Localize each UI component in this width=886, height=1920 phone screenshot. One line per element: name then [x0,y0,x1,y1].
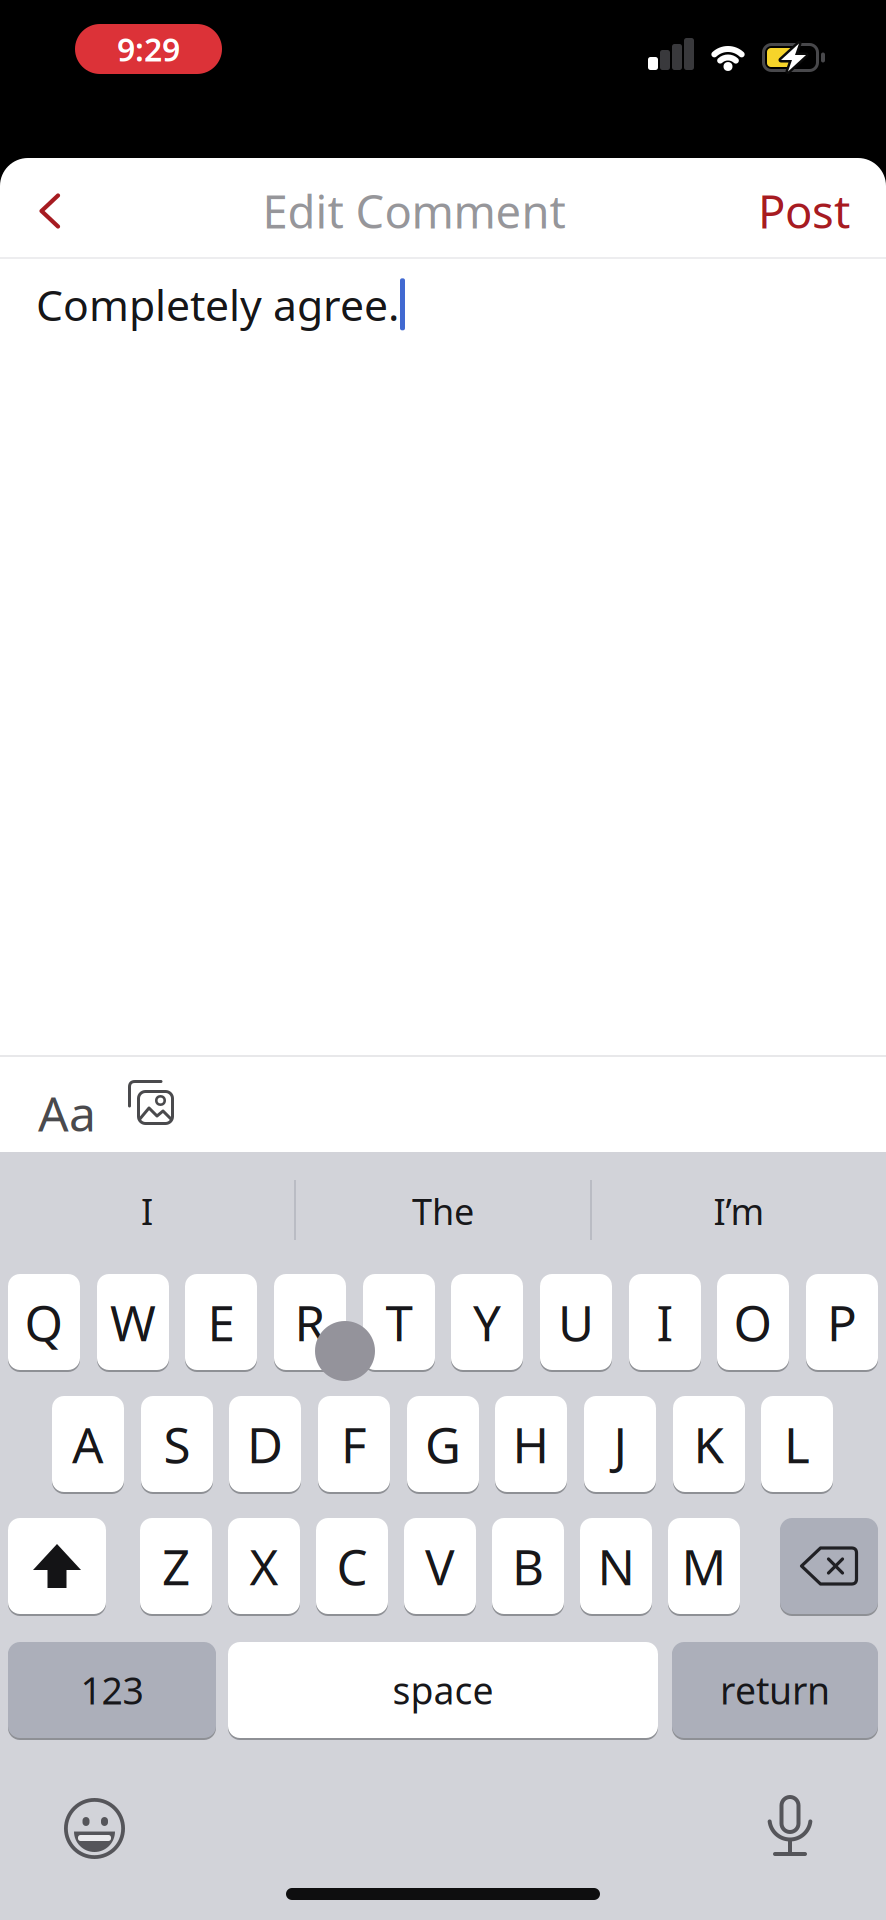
button[interactable] [128,1080,176,1128]
button[interactable]: O [717,1274,789,1370]
staticText: Z [162,1533,190,1599]
staticText: The [412,1187,474,1235]
staticText: Completely agree. [36,276,399,333]
staticText: U [558,1289,594,1355]
button[interactable]: return [672,1642,878,1738]
staticText: D [247,1411,283,1477]
button[interactable]: 9:29 [75,24,222,74]
staticText: 123 [80,1665,143,1715]
button[interactable]: 123 [8,1642,216,1738]
button[interactable]: I [629,1274,701,1370]
button[interactable]: Y [451,1274,523,1370]
staticText: A [72,1411,104,1477]
button[interactable]: K [673,1396,745,1492]
staticText: Aa [38,1081,96,1145]
staticText: K [693,1411,724,1477]
staticText: B [512,1533,544,1599]
button[interactable]: G [407,1396,479,1492]
button[interactable]: F [318,1396,390,1492]
staticText: Y [473,1289,501,1355]
staticText: G [425,1411,461,1477]
button[interactable] [20,183,80,239]
button[interactable]: I [0,1176,294,1246]
button[interactable]: M [668,1518,740,1614]
button[interactable]: space [228,1642,658,1738]
button[interactable] [780,1518,878,1614]
staticText: P [827,1289,857,1355]
button[interactable]: R [274,1274,346,1370]
staticText: R [294,1289,325,1355]
button[interactable]: Post [758,181,850,241]
button[interactable] [64,1798,125,1859]
button[interactable]: E [185,1274,257,1370]
button[interactable]: V [404,1518,476,1614]
button[interactable]: C [316,1518,388,1614]
button[interactable]: U [540,1274,612,1370]
button[interactable]: Aa [38,1081,96,1145]
button[interactable]: A [52,1396,124,1492]
button[interactable]: The [296,1176,590,1246]
button[interactable]: J [584,1396,656,1492]
button[interactable]: L [761,1396,833,1492]
staticText: X [249,1533,278,1599]
staticText: F [341,1411,367,1477]
button[interactable]: I’m [592,1176,886,1246]
staticText: N [597,1533,634,1599]
staticText: Post [758,181,850,241]
staticText: T [385,1289,412,1355]
button[interactable]: H [495,1396,567,1492]
button[interactable]: Q [8,1274,80,1370]
button[interactable] [769,1795,811,1857]
staticText: return [720,1665,830,1715]
staticText: 9:29 [117,28,180,70]
staticText: I [656,1289,673,1355]
staticText: E [207,1289,234,1355]
staticText: I’m [713,1187,764,1235]
staticText: C [336,1533,367,1599]
staticText: W [110,1289,156,1355]
staticText: S [163,1411,190,1477]
staticText: space [392,1665,493,1715]
staticText: H [512,1411,549,1477]
button[interactable]: D [229,1396,301,1492]
button[interactable]: N [580,1518,652,1614]
button[interactable]: T [363,1274,435,1370]
staticText: J [613,1411,626,1477]
staticText: Q [24,1289,63,1355]
staticText: O [733,1289,772,1355]
button[interactable]: S [141,1396,213,1492]
staticText: L [784,1411,810,1477]
staticText: M [681,1533,726,1599]
button[interactable]: X [228,1518,300,1614]
staticText: Edit Comment [262,181,565,241]
button[interactable]: Z [140,1518,212,1614]
staticText: V [425,1533,455,1599]
staticText: I [141,1187,153,1235]
button[interactable]: B [492,1518,564,1614]
button[interactable]: W [97,1274,169,1370]
button[interactable] [8,1518,106,1614]
button[interactable]: P [806,1274,878,1370]
